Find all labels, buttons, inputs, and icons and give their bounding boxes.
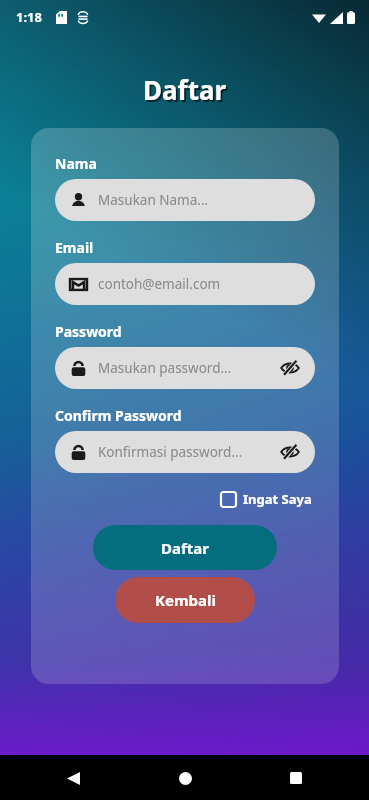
staticText: Confirm Password [55,406,182,425]
button[interactable]: Daftar [93,525,277,570]
button[interactable]: contoh@email.com [55,263,315,305]
button[interactable]: Toggle password visibility [279,357,301,379]
button[interactable]: Home [170,763,200,793]
button[interactable]: Toggle password visibility [279,441,301,463]
button[interactable]: Ingat Saya [218,487,315,511]
staticText: Email [55,238,94,257]
button[interactable]: Konfirmasi password... [55,431,315,473]
button[interactable]: Kembali [115,577,255,623]
staticText: 1:18 [16,8,42,26]
staticText: Daftar [161,538,209,558]
staticText: Ingat Saya [243,490,312,508]
button[interactable]: Recents [281,763,311,793]
staticText: contoh@email.com [98,275,301,293]
button[interactable]: Masukan Nama... [55,179,315,221]
button[interactable]: Back [58,763,88,793]
staticText: Daftar [143,72,227,107]
staticText: Daftar [145,74,229,109]
staticText: Masukan Nama... [98,191,301,209]
staticText: Konfirmasi password... [98,443,279,461]
staticText: Nama [55,154,97,173]
staticText: Password [55,322,122,341]
staticText: Masukan password... [98,359,279,377]
button[interactable]: Masukan password... [55,347,315,389]
staticText: Kembali [155,590,216,610]
